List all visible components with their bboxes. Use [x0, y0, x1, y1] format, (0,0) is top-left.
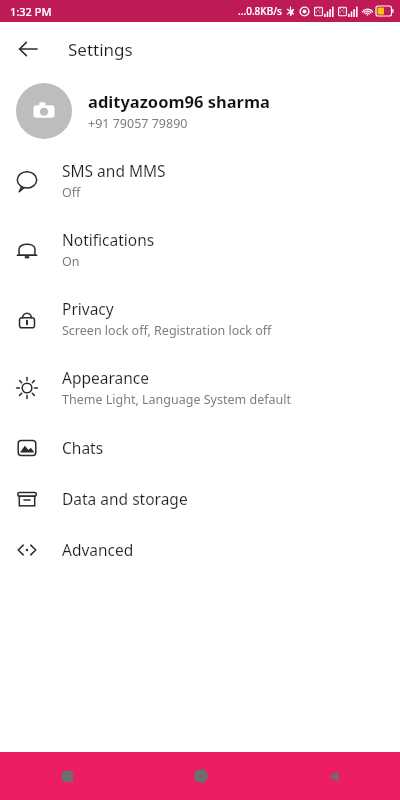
staticText: +91 79057 79890: [88, 115, 188, 132]
staticText: SMS and MMS: [62, 160, 166, 181]
button[interactable]: Advanced: [0, 524, 400, 575]
button[interactable]: Privacy: [0, 284, 400, 353]
button[interactable]: Home: [134, 752, 267, 800]
staticText: Notifications: [62, 229, 155, 250]
staticText: Off: [62, 184, 81, 201]
staticText: 1:32 PM: [10, 4, 52, 19]
button[interactable]: SMS and MMS: [0, 146, 400, 215]
staticText: Theme Light, Language System default: [62, 391, 291, 408]
staticText: Settings: [68, 38, 133, 61]
staticText: Privacy: [62, 298, 114, 319]
staticText: adityazoom96 sharma: [88, 90, 270, 112]
staticText: On: [62, 253, 80, 270]
staticText: ...0.8KB/s: [238, 4, 282, 18]
button[interactable]: Appearance: [0, 353, 400, 422]
button[interactable]: Notifications: [0, 215, 400, 284]
staticText: Data and storage: [62, 488, 188, 509]
button[interactable]: adityazoom96 sharma: [0, 76, 400, 146]
button[interactable]: Back: [8, 29, 48, 69]
staticText: Advanced: [62, 539, 134, 560]
staticText: Chats: [62, 437, 104, 458]
button[interactable]: Data and storage: [0, 473, 400, 524]
button[interactable]: Back: [267, 752, 400, 800]
button[interactable]: Recent apps: [0, 752, 134, 800]
staticText: Screen lock off, Registration lock off: [62, 322, 272, 339]
staticText: Appearance: [62, 367, 149, 388]
button[interactable]: Chats: [0, 422, 400, 473]
